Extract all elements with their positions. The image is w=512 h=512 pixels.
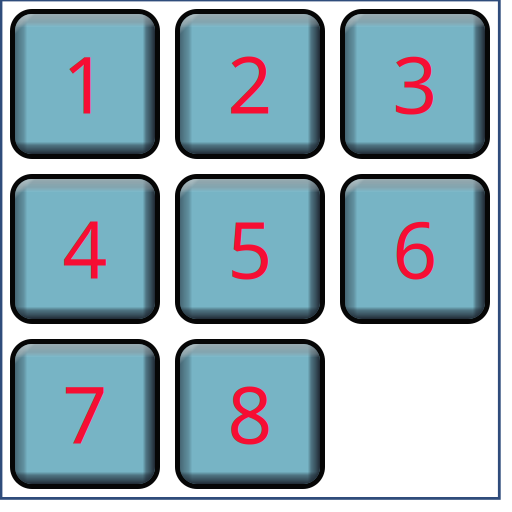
- button[interactable]: 2: [175, 9, 325, 159]
- button[interactable]: 3: [340, 9, 490, 159]
- staticText: 4: [62, 196, 107, 300]
- staticText: 1: [62, 31, 107, 135]
- button[interactable]: 5: [175, 174, 325, 324]
- staticText: 7: [62, 361, 107, 465]
- staticText: 6: [392, 196, 437, 300]
- button[interactable]: 6: [340, 174, 490, 324]
- button[interactable]: 7: [10, 339, 160, 489]
- staticText: 3: [392, 31, 437, 135]
- button[interactable]: 8: [175, 339, 325, 489]
- staticText: 2: [227, 31, 272, 135]
- staticText: 5: [227, 196, 272, 300]
- staticText: 8: [227, 361, 272, 465]
- button[interactable]: 1: [10, 9, 160, 159]
- button[interactable]: 4: [10, 174, 160, 324]
